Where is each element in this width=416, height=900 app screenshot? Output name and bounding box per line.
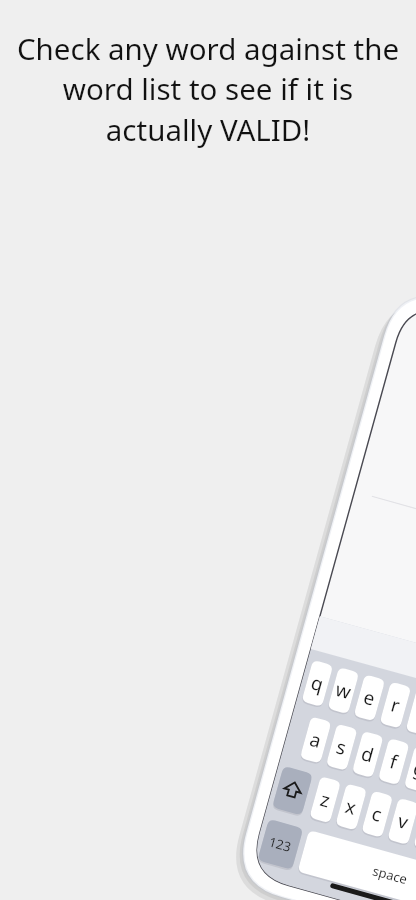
- button[interactable]: Check any word against the word list to …: [14, 28, 402, 150]
- other: Word check preview: [0, 0, 416, 900]
- staticText: Check any word against the word list to …: [14, 28, 402, 150]
